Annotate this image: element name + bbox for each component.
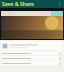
button[interactable]	[1, 11, 63, 39]
button[interactable]: More options	[57, 2, 62, 7]
staticText: Save & Share	[2, 1, 35, 8]
button[interactable]: Share	[1, 56, 63, 60]
button[interactable]	[1, 41, 63, 50]
button[interactable]: Share	[1, 61, 63, 65]
button[interactable]: Share	[1, 51, 63, 55]
button[interactable]: Save & Share	[0, 0, 64, 8]
